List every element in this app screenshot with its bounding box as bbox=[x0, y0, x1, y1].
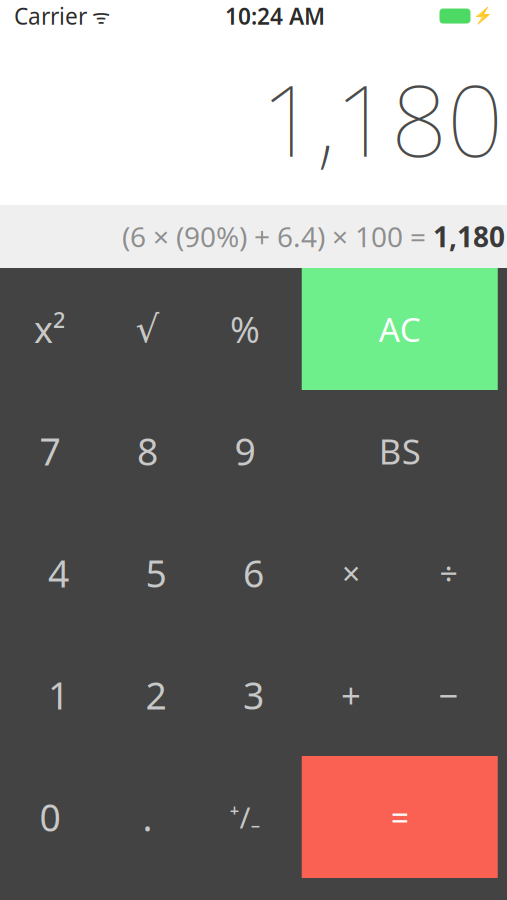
button[interactable]: √ bbox=[99, 268, 196, 390]
button[interactable]: = bbox=[302, 756, 498, 878]
button[interactable]: % bbox=[196, 268, 294, 390]
button[interactable]: × bbox=[302, 512, 400, 634]
button[interactable]: 2 bbox=[107, 634, 205, 756]
button[interactable]: + bbox=[302, 634, 400, 756]
staticText: 1,180 bbox=[261, 53, 503, 184]
staticText: √ bbox=[135, 308, 159, 350]
staticText: − bbox=[438, 672, 458, 718]
staticText: 8 bbox=[137, 426, 158, 476]
staticText: × bbox=[342, 552, 360, 594]
staticText: 6 bbox=[243, 548, 264, 598]
button[interactable]: − bbox=[400, 634, 497, 756]
staticText: 3 bbox=[243, 670, 264, 720]
staticText: ᯤ bbox=[87, 3, 110, 29]
button[interactable]: 3 bbox=[205, 634, 302, 756]
staticText: 9 bbox=[234, 426, 255, 476]
staticText: ÷ bbox=[439, 552, 457, 594]
staticText: 1,180 bbox=[433, 218, 505, 255]
button[interactable]: 6 bbox=[205, 512, 302, 634]
staticText: + bbox=[341, 672, 361, 718]
staticText: . bbox=[142, 792, 152, 842]
staticText: BS bbox=[379, 428, 421, 474]
button[interactable]: ⁺/₋ bbox=[196, 756, 294, 878]
staticText: 7 bbox=[39, 426, 60, 476]
button[interactable]: 0 bbox=[1, 756, 99, 878]
staticText: % bbox=[230, 305, 260, 353]
button[interactable]: 1 bbox=[10, 634, 107, 756]
button[interactable]: . bbox=[99, 756, 196, 878]
button[interactable]: BS bbox=[294, 390, 506, 512]
staticText: (6 × (90%) + 6.4) × 100 = bbox=[122, 218, 433, 255]
button[interactable]: 5 bbox=[107, 512, 205, 634]
button[interactable]: 9 bbox=[196, 390, 294, 512]
staticText: 4 bbox=[48, 548, 69, 598]
button[interactable]: x² bbox=[1, 268, 99, 390]
button[interactable]: AC bbox=[302, 268, 498, 390]
button[interactable]: 7 bbox=[1, 390, 99, 512]
staticText: AC bbox=[379, 307, 421, 351]
staticText: 10:24 AM bbox=[225, 1, 325, 31]
staticText: Carrier bbox=[14, 1, 87, 31]
staticText: x² bbox=[34, 305, 66, 353]
staticText: 5 bbox=[145, 548, 166, 598]
staticText: 0 bbox=[39, 792, 60, 842]
staticText: ⁺/₋ bbox=[229, 797, 260, 836]
staticText: 2 bbox=[145, 670, 166, 720]
button[interactable]: 4 bbox=[10, 512, 107, 634]
button[interactable]: ÷ bbox=[400, 512, 497, 634]
staticText: 1 bbox=[48, 670, 69, 720]
staticText: ⚡ bbox=[473, 7, 493, 25]
button[interactable]: 8 bbox=[99, 390, 196, 512]
staticText: = bbox=[391, 796, 409, 838]
